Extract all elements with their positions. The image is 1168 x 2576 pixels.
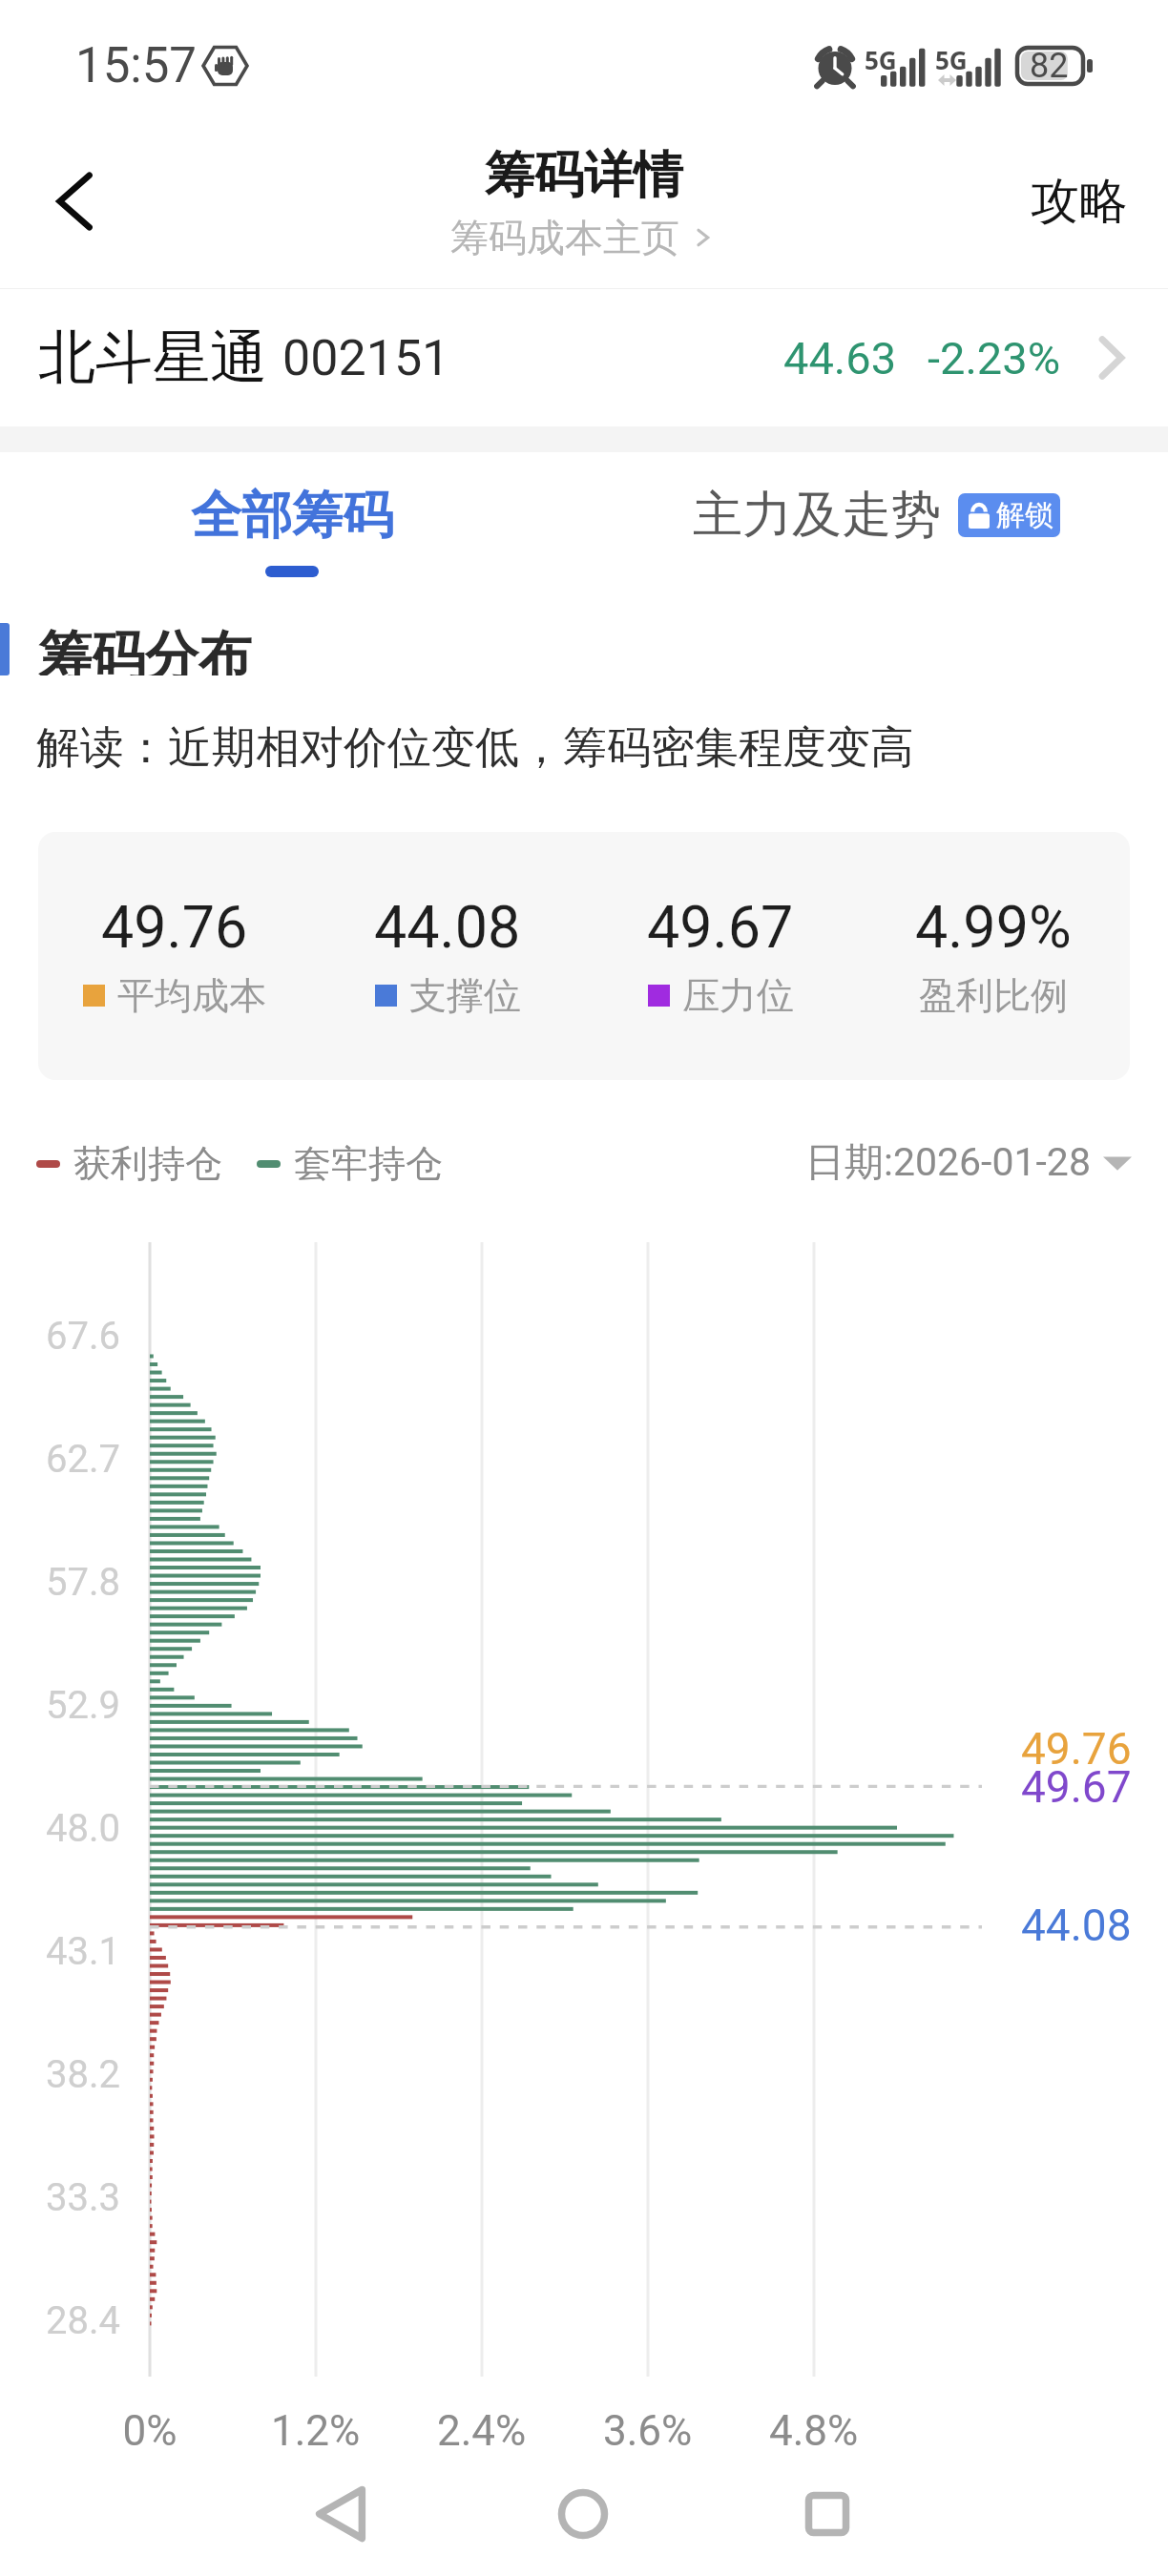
staticText: 盈利比例 xyxy=(919,972,1068,1019)
staticText: 筹码分布 xyxy=(38,623,252,675)
staticText: 44.63 xyxy=(783,332,897,384)
staticText: 44.08 xyxy=(374,893,521,961)
button[interactable]: 北斗星通 xyxy=(0,289,1168,426)
button[interactable]: 主力及走势 xyxy=(584,452,1168,592)
staticText: 筹码详情 xyxy=(485,144,683,207)
button[interactable]: 攻略 xyxy=(1019,152,1139,251)
staticText: 49.76 xyxy=(101,893,248,961)
staticText: 4.99% xyxy=(915,893,1072,961)
staticText: 平均成本 xyxy=(117,972,266,1019)
staticText: 北斗星通 xyxy=(38,322,267,394)
button[interactable]: 日期:2026-01-28 xyxy=(805,1138,1132,1188)
staticText: -2.23% xyxy=(928,332,1061,384)
staticText: 49.67 xyxy=(647,893,794,961)
staticText: 全部筹码 xyxy=(191,484,393,548)
button[interactable]: 筹码成本主页 xyxy=(450,214,718,261)
staticText: 日期:2026-01-28 xyxy=(805,1138,1091,1188)
staticText: 支撑位 xyxy=(409,972,521,1019)
button[interactable]: Home xyxy=(502,2452,664,2576)
staticText: 压力位 xyxy=(682,972,794,1019)
staticText: 主力及走势 xyxy=(693,484,941,547)
staticText: 攻略 xyxy=(1031,171,1128,232)
staticText: 002151 xyxy=(282,329,450,387)
button[interactable]: 全部筹码 xyxy=(0,452,584,592)
button[interactable]: Back xyxy=(260,2452,422,2576)
staticText: 套牢持仓 xyxy=(294,1140,443,1187)
staticText: 解锁 xyxy=(996,497,1053,533)
staticText: 筹码成本主页 xyxy=(450,214,679,261)
staticText: 获利持仓 xyxy=(73,1140,222,1187)
button[interactable]: Back xyxy=(21,146,132,257)
button[interactable]: Recent apps xyxy=(746,2452,908,2576)
staticText: 解读：近期相对价位变低，筹码密集程度变高 xyxy=(36,720,914,776)
